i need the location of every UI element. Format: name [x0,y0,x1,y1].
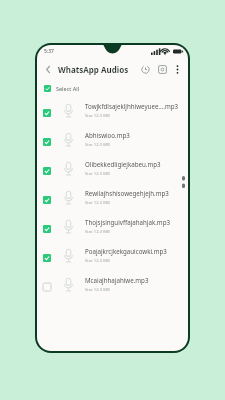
button[interactable]: Poajajkrcjkekgauicowki.mp3 [37,241,188,270]
staticText: Size 12.3 MB [85,200,110,206]
button[interactable]: Back [42,63,55,76]
button[interactable]: Towjkfdlsajekljhhiweyuee....mp3 [37,96,188,125]
staticText: Size 12.3 MB [85,113,110,119]
staticText: 5:37 [44,48,54,55]
staticText: Size 12.3 MB [85,142,110,148]
button[interactable]: More options [171,63,183,75]
button[interactable]: Olibekkedligiejkabeu.mp3 [37,154,188,183]
staticText: Rewilajhshisowegehjejh.mp3 [85,189,169,197]
staticText: WhatsApp Audios [58,64,129,75]
button[interactable]: Rewilajhshisowegehjejh.mp3 [37,183,188,212]
staticText: Size 12.3 MB [85,171,110,177]
staticText: Poajajkrcjkekgauicowki.mp3 [85,247,167,255]
staticText: Towjkfdlsajekljhhiweyuee....mp3 [85,102,179,110]
button[interactable]: Thojsjsinguivffajahahjak.mp3 [37,212,188,241]
button[interactable]: Abhiswioo.mp3 [37,125,188,154]
button[interactable]: History [138,62,152,76]
staticText: Size 12.3 MB [85,258,110,264]
staticText: Size 12.3 MB [85,287,110,293]
button[interactable]: Mcaiajhhajahiwe.mp3 [37,270,188,299]
staticText: Size 12.3 MB [85,229,110,235]
button[interactable]: Save [155,62,169,76]
staticText: Abhiswioo.mp3 [85,131,130,139]
staticText: Mcaiajhhajahiwe.mp3 [85,276,149,284]
staticText: Select All [56,85,80,92]
button[interactable]: Select All [37,80,188,96]
staticText: Thojsjsinguivffajahahjak.mp3 [85,218,170,226]
staticText: Olibekkedligiejkabeu.mp3 [85,160,161,168]
